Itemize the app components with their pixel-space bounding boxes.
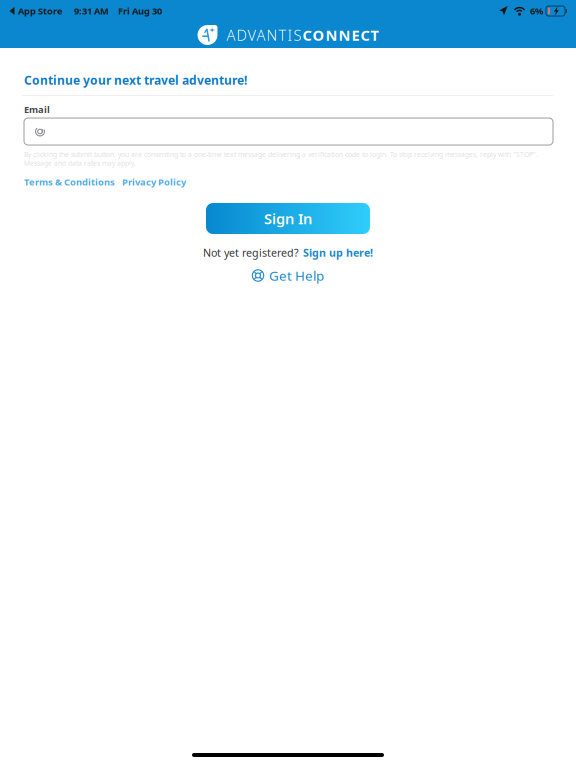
staticText: Continue your next travel adventure! bbox=[24, 72, 247, 88]
staticText: Get Help bbox=[269, 267, 324, 284]
button[interactable]: Terms & Conditions bbox=[24, 176, 115, 188]
staticText: Not yet registered? bbox=[203, 245, 299, 260]
button[interactable]: Get Help bbox=[0, 268, 576, 283]
staticText: Sign In bbox=[264, 209, 312, 228]
staticText: By clicking the submit button, you are c… bbox=[24, 150, 538, 168]
staticText: Terms & Conditions bbox=[24, 176, 115, 188]
staticText: Sign up here! bbox=[303, 245, 373, 260]
staticText: App Store bbox=[18, 5, 63, 17]
button[interactable]: Sign In bbox=[206, 203, 370, 234]
staticText: ADVANTISCONNECT bbox=[226, 25, 378, 45]
staticText: Privacy Policy bbox=[122, 176, 186, 188]
button[interactable]: Sign up here! bbox=[303, 245, 373, 260]
button[interactable]: Privacy Policy bbox=[122, 176, 186, 188]
staticText: 9:31 AM bbox=[74, 5, 109, 17]
staticText: 6% bbox=[530, 5, 543, 17]
staticText: Fri Aug 30 bbox=[118, 5, 162, 17]
staticText: Email bbox=[24, 103, 50, 116]
